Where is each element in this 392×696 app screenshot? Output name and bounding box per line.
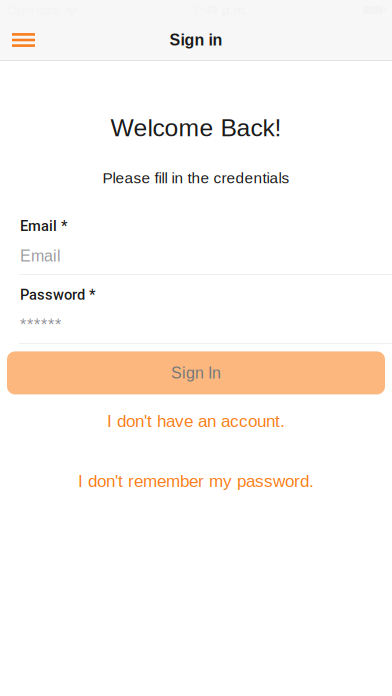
button[interactable]: I don't have an account.	[0, 404, 392, 437]
staticText: Password *	[20, 286, 96, 303]
staticText: Please fill in the credentials	[102, 169, 289, 186]
staticText: Sign In	[171, 364, 221, 382]
staticText: Email *	[20, 217, 68, 234]
staticText: ******	[20, 316, 61, 334]
staticText: I don't have an account.	[107, 411, 285, 431]
staticText: Welcome Back!	[110, 114, 281, 142]
button[interactable]: I don't remember my password.	[0, 464, 392, 497]
button[interactable]: Sign In	[7, 351, 385, 394]
staticText: I don't remember my password.	[78, 471, 314, 491]
button[interactable]: Menu	[0, 20, 49, 60]
staticText: Sign in	[169, 31, 222, 49]
staticText: Email	[20, 247, 61, 265]
